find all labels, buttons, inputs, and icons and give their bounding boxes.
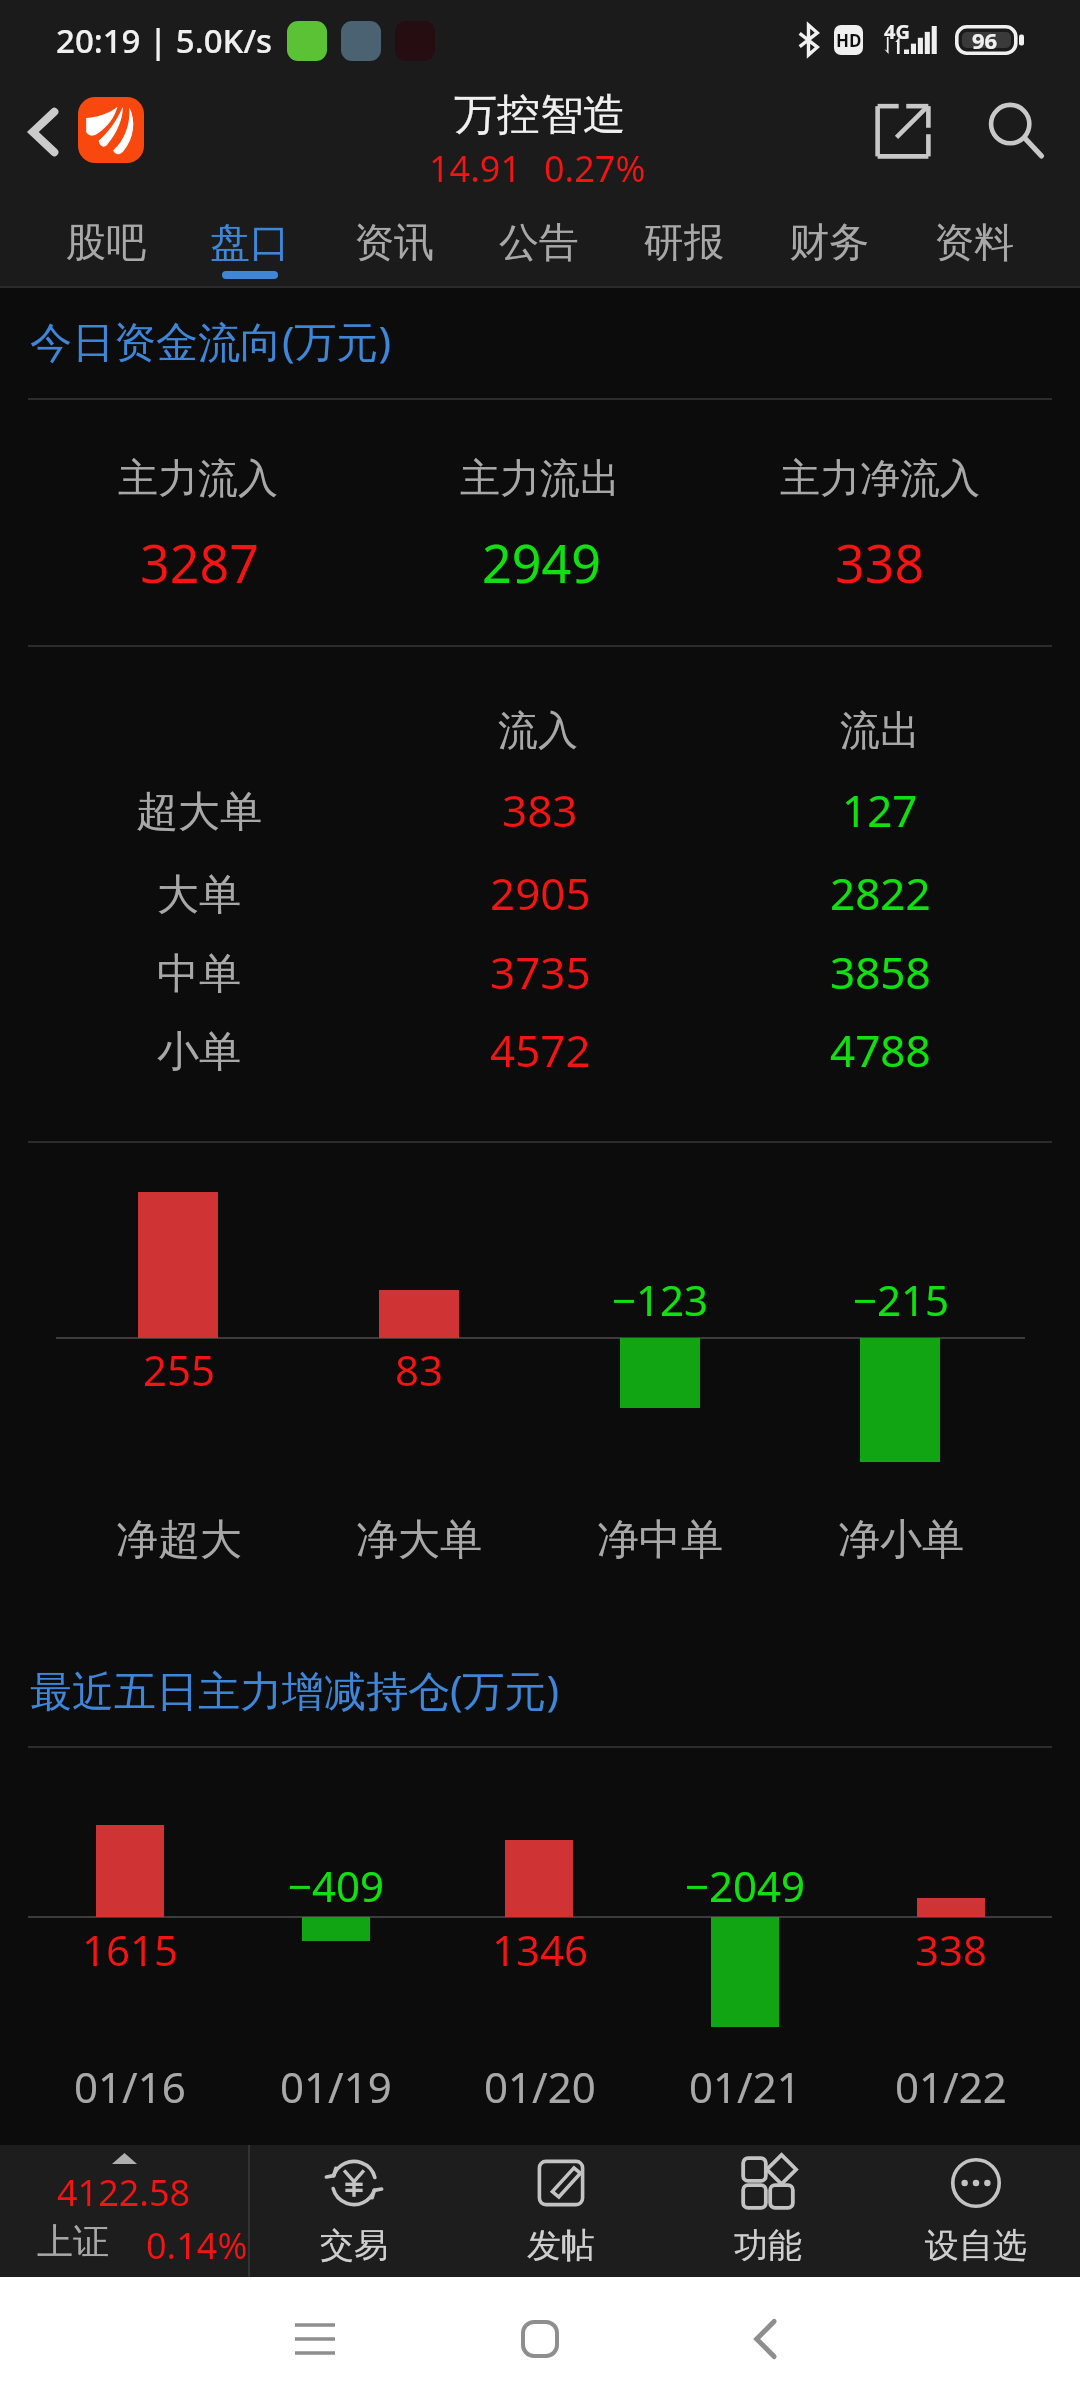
button[interactable]: Search [975,90,1057,172]
button[interactable]: More [872,2145,1080,2277]
staticText: 大单 [157,869,241,922]
button[interactable]: Home [495,2294,585,2384]
staticText: 1615 [82,1921,179,1978]
button[interactable]: Share [862,90,944,172]
staticText: 01/21 [689,2058,801,2115]
staticText: 小单 [157,1026,241,1079]
staticText: 0.27% [544,144,646,193]
staticText: 万控智造 [454,88,626,142]
button[interactable]: 上证指数 4122.58 0.14% [0,2145,248,2277]
staticText: 83 [395,1341,444,1398]
staticText: 净大单 [356,1514,482,1567]
staticText: 4122.58 [57,2168,191,2217]
button[interactable]: Trade [250,2145,457,2277]
staticText: −215 [853,1271,950,1328]
button[interactable]: Post [457,2145,664,2277]
staticText: 4788 [830,1020,931,1080]
staticText: −2049 [685,1857,806,1914]
staticText: 主力流入 [118,453,278,503]
button[interactable]: Functions [664,2145,872,2277]
staticText: HD [836,29,862,52]
staticText: 超大单 [136,786,262,839]
button[interactable]: 股吧 [34,192,178,288]
button[interactable]: Recents [270,2294,360,2384]
other: Functions [741,2156,795,2210]
staticText: 20:19 | 5.0K/s [56,18,273,63]
staticText: 01/16 [74,2058,186,2115]
staticText: 2905 [490,863,591,923]
button[interactable]: 公告 [466,192,611,288]
staticText: 14.91 [429,144,522,193]
staticText: 4G [884,18,910,45]
staticText: 资讯 [354,217,434,267]
staticText: 3735 [490,942,591,1002]
staticText: 资料 [934,217,1014,267]
staticText: 4572 [490,1020,591,1080]
staticText: 盘口 [210,217,290,267]
button[interactable]: Back [13,102,73,162]
staticText: 流出 [840,705,920,755]
staticText: 主力流出 [460,453,620,503]
staticText: 2949 [482,527,601,598]
staticText: 0.14% [146,2221,248,2270]
button[interactable]: 盘口 [178,192,322,288]
staticText: 交易 [320,2224,388,2267]
staticText: 3858 [830,942,931,1002]
other: More [949,2156,1003,2210]
staticText: 功能 [734,2224,802,2267]
staticText: 发帖 [527,2224,595,2267]
staticText: 338 [835,527,925,598]
staticText: 研报 [644,217,724,267]
staticText: 01/22 [895,2058,1007,2115]
staticText: 127 [842,780,918,840]
staticText: 财务 [789,217,869,267]
staticText: 净小单 [838,1514,964,1567]
button[interactable]: Eastmoney [78,97,144,163]
other: Trade [327,2156,381,2210]
staticText: 255 [143,1341,216,1398]
button[interactable]: 资料 [901,192,1046,288]
staticText: 338 [915,1921,988,1978]
staticText: 上证 [37,2219,109,2264]
staticText: 2822 [830,863,931,923]
button[interactable]: 资讯 [322,192,466,288]
staticText: 主力净流入 [780,453,980,503]
staticText: 01/20 [484,2058,596,2115]
button[interactable]: Back [720,2294,810,2384]
button[interactable]: 研报 [611,192,756,288]
staticText: 01/19 [280,2058,392,2115]
staticText: 流入 [498,705,578,755]
staticText: −409 [288,1857,385,1914]
staticText: 设自选 [925,2224,1027,2267]
other: Post [534,2156,588,2210]
staticText: 今日资金流向(万元) [30,312,392,369]
staticText: 96 [972,25,998,55]
staticText: 3287 [140,527,259,598]
staticText: 净超大 [116,1514,242,1567]
staticText: 股吧 [66,217,146,267]
staticText: 中单 [157,948,241,1001]
staticText: 净中单 [597,1514,723,1567]
staticText: 最近五日主力增减持仓(万元) [30,1661,560,1718]
staticText: 1346 [492,1921,589,1978]
staticText: 公告 [499,217,579,267]
staticText: −123 [612,1271,709,1328]
staticText: 383 [502,780,578,840]
button[interactable]: 财务 [756,192,901,288]
